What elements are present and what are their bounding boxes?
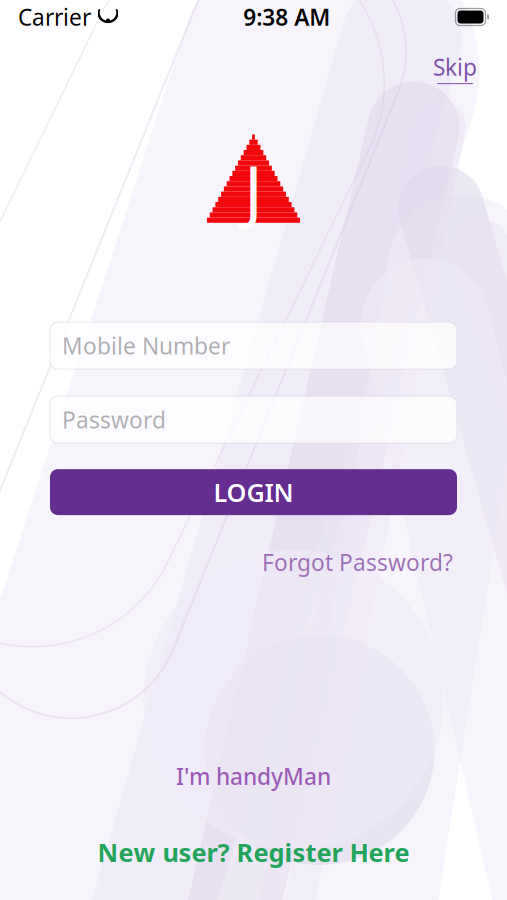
staticText: 9:38 AM [243,2,330,32]
button[interactable]: Mobile Number [50,322,457,369]
staticText: New user? Register Here [97,835,409,869]
staticText: Forgot Password? [262,547,453,577]
button[interactable]: New user? Register Here [87,830,419,874]
button[interactable]: Skip [427,48,483,88]
staticText: LOGIN [213,475,293,509]
button[interactable]: LOGIN [50,469,457,515]
button[interactable]: Forgot Password? [258,544,457,580]
button[interactable]: Password [50,396,457,443]
staticText: Password [62,405,166,435]
staticText: Skip [433,52,477,82]
staticText: I'm handyMan [176,761,331,791]
staticText: Carrier [18,2,91,32]
staticText: Mobile Number [62,331,230,361]
staticText: J [244,144,263,236]
button[interactable]: I'm handyMan [168,757,339,795]
